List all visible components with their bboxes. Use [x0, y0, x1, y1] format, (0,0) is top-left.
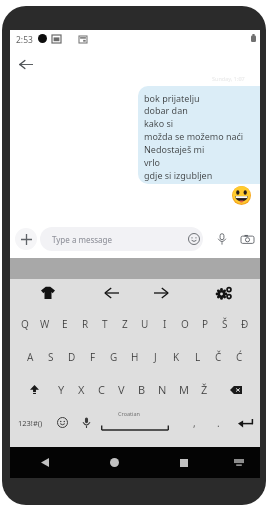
staticText: W — [40, 317, 50, 331]
staticText: U — [141, 317, 149, 331]
button[interactable]: G — [103, 340, 124, 373]
staticText: 2:53 — [16, 34, 33, 46]
button[interactable]: J — [145, 340, 166, 373]
button[interactable]: W — [35, 307, 55, 340]
button[interactable]: Type a message — [40, 227, 203, 251]
button[interactable]: Shift — [10, 373, 51, 406]
staticText: S — [48, 350, 54, 364]
button[interactable]: . — [206, 406, 231, 439]
staticText: Š — [222, 317, 228, 331]
button[interactable]: O — [175, 307, 195, 340]
button[interactable]: Emoji — [183, 228, 205, 250]
staticText: Y — [58, 382, 65, 397]
button[interactable]: Move cursor right — [145, 279, 177, 306]
button[interactable]: C — [91, 373, 111, 406]
button[interactable]: B — [131, 373, 152, 406]
staticText: O — [181, 317, 189, 331]
staticText: Croatian — [118, 410, 140, 417]
button[interactable]: Emoji keyboard — [50, 406, 74, 439]
staticText: X — [78, 382, 85, 397]
button[interactable]: Croatian — [98, 406, 182, 439]
staticText: V — [118, 382, 125, 397]
staticText: J — [154, 350, 157, 364]
button[interactable]: Change keyboard — [218, 447, 260, 478]
button[interactable]: , — [182, 406, 206, 439]
button[interactable]: N — [152, 373, 173, 406]
button[interactable]: D — [61, 340, 82, 373]
button[interactable]: U — [135, 307, 155, 340]
button[interactable]: I — [155, 307, 175, 340]
staticText: A — [27, 350, 34, 364]
button[interactable]: H — [124, 340, 145, 373]
staticText: B — [138, 382, 146, 397]
button[interactable]: Č — [208, 340, 229, 373]
staticText: Sunday, 1:07 — [212, 75, 245, 82]
staticText: R — [82, 317, 89, 331]
button[interactable]: Š — [215, 307, 235, 340]
staticText: Z — [122, 317, 128, 331]
staticText: Ž — [201, 382, 208, 397]
button[interactable]: Back — [15, 53, 37, 75]
button[interactable]: R — [75, 307, 95, 340]
staticText: Type a message — [52, 234, 113, 245]
button[interactable]: 123!#() — [10, 406, 50, 439]
staticText: Č — [215, 350, 222, 364]
button[interactable]: Keyboard settings — [208, 279, 240, 306]
button[interactable]: Recent apps — [149, 447, 218, 478]
staticText: N — [158, 382, 167, 397]
button[interactable]: Enter — [231, 406, 260, 439]
button[interactable]: P — [195, 307, 215, 340]
button[interactable]: A — [20, 340, 40, 373]
staticText: G — [110, 350, 118, 364]
button[interactable]: Back — [10, 447, 80, 478]
button[interactable]: Voice input — [74, 406, 98, 439]
staticText: Q — [21, 317, 29, 331]
button[interactable]: V — [111, 373, 131, 406]
staticText: 123!#() — [18, 418, 43, 428]
button[interactable]: K — [166, 340, 187, 373]
staticText: P — [202, 317, 209, 331]
staticText: , — [193, 416, 196, 430]
staticText: Ć — [236, 350, 243, 364]
staticText: . — [217, 416, 220, 430]
button[interactable]: Voice message — [211, 228, 233, 250]
button[interactable]: L — [187, 340, 208, 373]
staticText: D — [68, 350, 76, 364]
staticText: M — [179, 382, 189, 397]
button[interactable]: Ć — [229, 340, 250, 373]
button[interactable]: Ž — [194, 373, 215, 406]
staticText: F — [90, 350, 96, 364]
staticText: H — [131, 350, 139, 364]
button[interactable]: M — [173, 373, 194, 406]
button[interactable]: E — [55, 307, 75, 340]
staticText: I — [163, 317, 167, 331]
staticText: Đ — [241, 317, 249, 331]
button[interactable]: Backspace — [215, 373, 260, 406]
button[interactable]: X — [71, 373, 91, 406]
button[interactable]: Stickers — [32, 279, 64, 306]
button[interactable]: Z — [115, 307, 135, 340]
button[interactable]: S — [40, 340, 61, 373]
button[interactable]: T — [95, 307, 115, 340]
button[interactable]: Home — [80, 447, 149, 478]
button[interactable]: Q — [15, 307, 35, 340]
staticText: K — [173, 350, 180, 364]
button[interactable]: Y — [51, 373, 71, 406]
button[interactable]: Đ — [235, 307, 255, 340]
button[interactable]: Camera — [236, 228, 258, 250]
staticText: E — [62, 317, 68, 331]
button[interactable]: bok prijatelju dobar dan kako si možda s… — [138, 86, 260, 184]
staticText: T — [102, 317, 108, 331]
button[interactable]: Add attachment — [15, 228, 37, 250]
staticText: L — [195, 350, 201, 364]
button[interactable]: F — [82, 340, 103, 373]
staticText: bok prijatelju dobar dan kako si možda s… — [144, 92, 244, 182]
staticText: C — [98, 382, 105, 397]
button[interactable]: Move cursor left — [95, 279, 127, 306]
